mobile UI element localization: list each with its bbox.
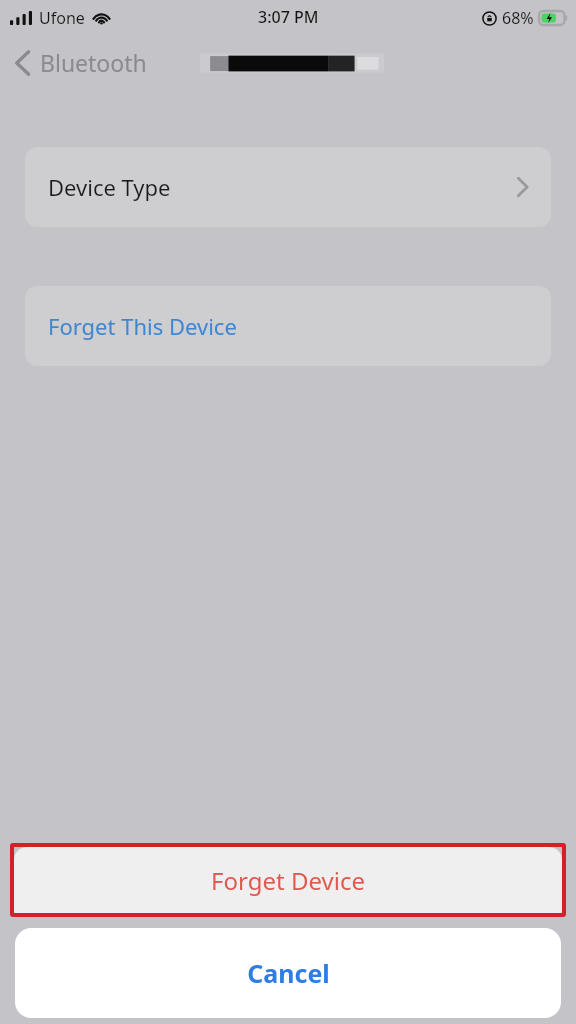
staticText: Bluetooth [40, 47, 147, 78]
button[interactable]: Forget This Device [25, 286, 551, 366]
staticText: Device Type [48, 172, 171, 202]
button[interactable]: Device Type [25, 147, 551, 227]
staticText: Forget This Device [48, 311, 237, 341]
button[interactable]: Bluetooth [8, 43, 153, 82]
staticText: 3:07 PM [258, 6, 319, 28]
staticText: 68% [502, 7, 534, 29]
button[interactable]: Forget Device [14, 847, 562, 913]
staticText: Cancel [247, 956, 330, 990]
button[interactable]: Cancel [15, 928, 561, 1018]
staticText: Ufone [39, 7, 85, 29]
staticText: Forget Device [211, 864, 365, 897]
